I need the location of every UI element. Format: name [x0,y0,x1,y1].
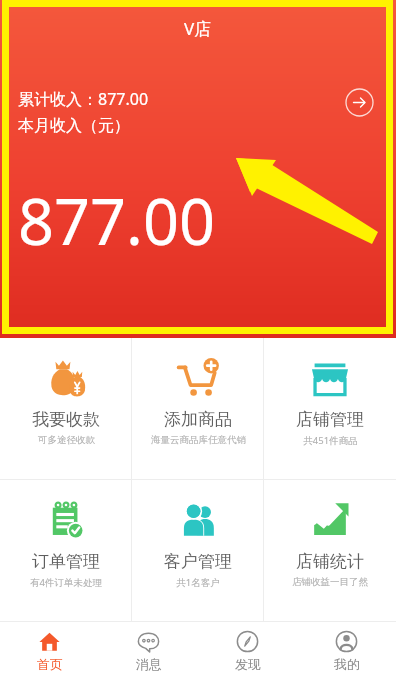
staticText: 店铺统计 [296,551,364,572]
button[interactable]: 查看详情 [345,88,374,117]
staticText: 共451件商品 [303,434,358,447]
staticText: 订单管理 [32,551,100,572]
staticText: 有4件订单未处理 [30,576,102,589]
staticText: 我要收款 [32,409,100,430]
staticText: 共1名客户 [176,576,220,589]
button[interactable]: 店铺管理 [264,338,396,479]
button[interactable]: V店 [0,0,396,338]
button[interactable]: 首页 [0,622,99,678]
staticText: 添加商品 [164,409,232,430]
button[interactable]: 订单管理 [0,480,132,621]
staticText: 消息 [136,656,162,672]
staticText: 海量云商品库任意代销 [151,434,246,446]
staticText: 累计收入：877.00 [18,88,149,110]
button[interactable]: 我要收款 [0,338,132,479]
staticText: 首页 [37,656,63,672]
staticText: 我的 [334,656,360,672]
button[interactable]: 添加商品 [132,338,264,479]
staticText: 发现 [235,656,261,672]
button[interactable]: 我的 [297,622,396,678]
button[interactable]: 消息 [99,622,198,678]
staticText: 可多途径收款 [38,434,95,446]
staticText: V店 [184,17,212,40]
staticText: 本月收入（元） [18,116,130,136]
staticText: 店铺管理 [296,409,364,430]
staticText: 客户管理 [164,551,232,572]
staticText: 877.00 [18,178,216,264]
button[interactable]: 客户管理 [132,480,264,621]
staticText: 店铺收益一目了然 [292,576,368,588]
button[interactable]: 发现 [198,622,297,678]
button[interactable]: 店铺统计 [264,480,396,621]
